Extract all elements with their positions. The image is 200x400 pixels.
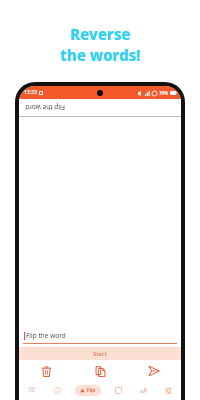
button[interactable]: Flip	[75, 385, 101, 396]
button[interactable]: Settings	[161, 383, 175, 397]
button[interactable]: Flip the word	[19, 327, 181, 343]
staticText: the words!	[60, 45, 141, 65]
staticText: Flip the word	[25, 103, 65, 112]
button[interactable]: Keyboard	[25, 383, 39, 397]
staticText: 79%	[159, 90, 168, 96]
button[interactable]: Copy	[91, 362, 109, 380]
button[interactable]: Fonts	[136, 383, 150, 397]
button[interactable]: Delete	[37, 362, 55, 380]
staticText: 13:33	[24, 89, 37, 96]
button[interactable]: Start	[19, 347, 181, 360]
button[interactable]: Stickers	[111, 383, 125, 397]
staticText: Flip the word	[26, 331, 66, 340]
button[interactable]: Emoji	[50, 383, 64, 397]
staticText: Start	[93, 350, 107, 358]
staticText: Reverse	[70, 24, 131, 44]
button[interactable]: Send	[145, 362, 163, 380]
staticText: Flip	[87, 387, 96, 394]
button[interactable]: Flip the word	[19, 99, 181, 116]
